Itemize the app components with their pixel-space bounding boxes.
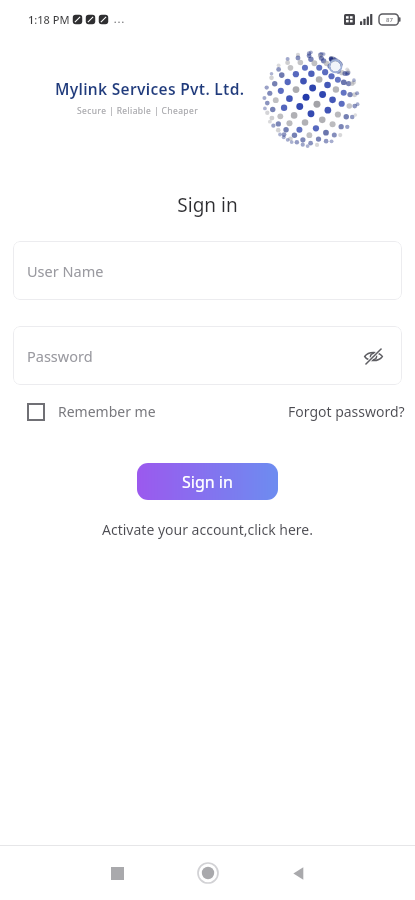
button[interactable]: User Name [13,241,402,300]
staticText: Password [27,346,93,366]
staticText: Mylink Services Pvt. Ltd. [55,78,245,99]
staticText: Sign in [182,471,233,493]
button[interactable]: Activate your account,click here. [0,520,415,539]
button[interactable]: Recent apps [100,856,134,890]
button[interactable]: Home [189,854,227,892]
button[interactable]: Forgot password? [288,402,405,421]
button[interactable]: Back [281,856,315,890]
staticText: 1:18 PM [28,12,70,27]
button[interactable]: Sign in [137,463,278,500]
staticText: Secure | Reliable | Cheaper [77,105,199,117]
button[interactable]: Remember me [27,402,156,421]
button[interactable]: Show password [356,339,390,373]
staticText: Remember me [58,402,156,421]
staticText: Sign in [0,192,415,218]
button[interactable]: Password [13,326,402,385]
staticText: User Name [27,261,104,281]
staticText: 87 [386,16,393,24]
